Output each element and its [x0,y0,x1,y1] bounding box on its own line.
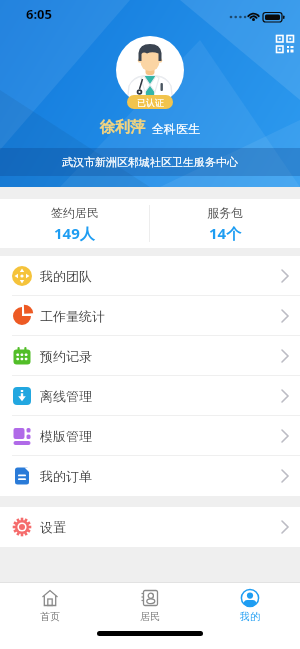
staticText: 149人 [54,223,95,243]
button[interactable]: 我的 [200,583,300,627]
staticText: 设置 [40,519,66,535]
staticText: 已认证 [137,97,164,108]
button[interactable]: 我的订单 [0,456,300,496]
staticText: 徐利萍 [100,118,145,137]
staticText: 6:05 [26,5,52,23]
button[interactable]: 工作量统计 [0,296,300,336]
staticText: 全科医生 [152,121,200,136]
staticText: 预约记录 [40,348,92,364]
button[interactable]: 我的团队 [0,256,300,296]
button[interactable]: 离线管理 [0,376,300,416]
button[interactable]: 预约记录 [0,336,300,376]
staticText: 我的团队 [40,268,92,284]
button[interactable]: 首页 [0,583,100,627]
button[interactable]: 居民 [100,583,200,627]
button[interactable]: 服务包 [150,199,300,248]
button[interactable] [272,31,298,57]
staticText: 居民 [140,610,160,623]
staticText: 14个 [209,223,242,243]
staticText: 我的 [240,610,260,623]
staticText: 离线管理 [40,388,92,404]
button[interactable] [116,36,184,104]
staticText: 工作量统计 [40,308,105,324]
staticText: 模版管理 [40,428,92,444]
button[interactable]: 设置 [0,507,300,547]
staticText: 我的订单 [40,468,92,484]
staticText: 武汉市新洲区邾城社区卫生服务中心 [62,155,238,169]
staticText: 服务包 [207,205,243,220]
button[interactable]: 签约居民 [0,199,149,248]
staticText: 签约居民 [51,205,99,220]
staticText: 首页 [40,610,60,623]
button[interactable]: 模版管理 [0,416,300,456]
